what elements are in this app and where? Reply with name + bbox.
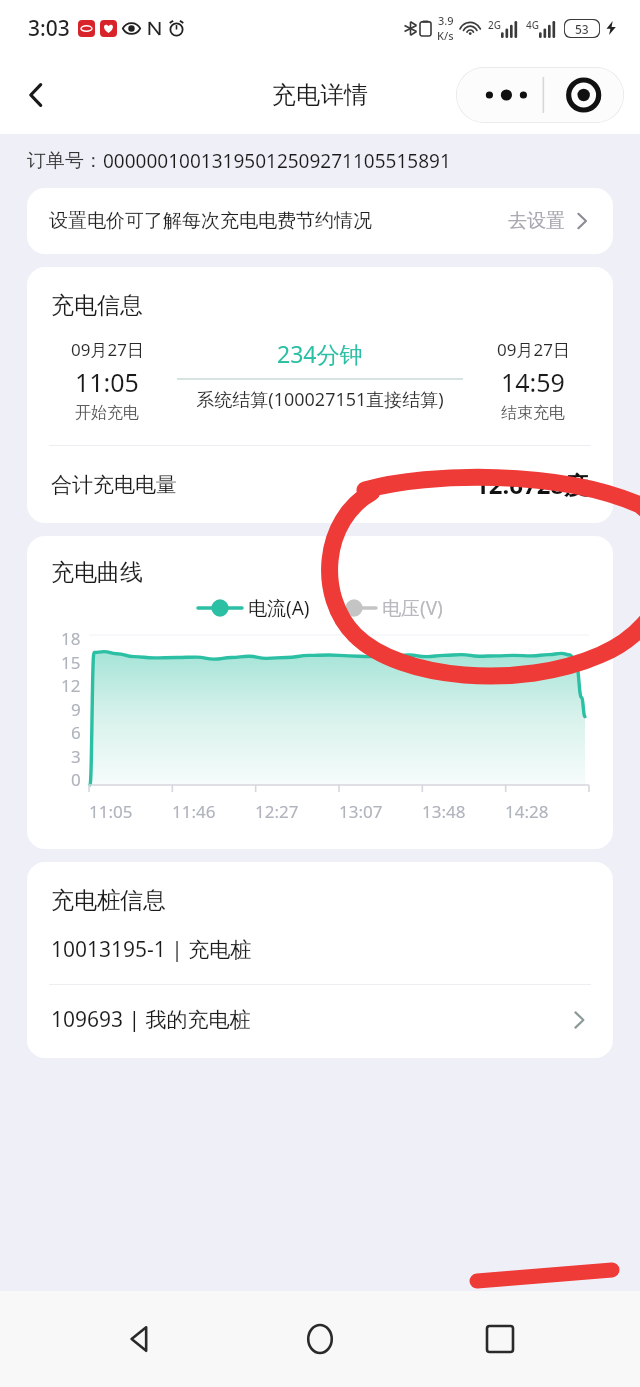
staticText: K/s	[437, 28, 454, 43]
staticText: 12	[61, 674, 81, 697]
staticText: 2G	[488, 18, 501, 32]
staticText: 设置电价可了解每次充电电费节约情况	[49, 209, 372, 233]
staticText: 234分钟	[277, 338, 363, 369]
staticText: 18	[61, 627, 81, 650]
staticText: 充电曲线	[51, 558, 143, 587]
staticText: 14:59	[501, 365, 565, 399]
button[interactable]: Home	[280, 1299, 360, 1379]
staticText: 12.6728度	[475, 468, 589, 501]
staticText: 3:03	[28, 14, 70, 43]
staticText: 系统结算(100027151直接结算)	[196, 387, 444, 412]
button[interactable]: Recents	[460, 1299, 540, 1379]
button[interactable]: Back	[100, 1299, 180, 1379]
staticText: 0	[71, 768, 81, 791]
staticText: 3.9	[438, 13, 454, 28]
staticText: 4G	[526, 18, 539, 32]
staticText: 11:05	[89, 800, 133, 823]
staticText: 充电信息	[51, 291, 143, 320]
staticText: 12:27	[255, 800, 299, 823]
staticText: 15	[61, 651, 81, 674]
staticText: 去设置	[508, 209, 565, 233]
staticText: 09月27日	[497, 338, 570, 361]
staticText: 14:28	[505, 800, 549, 823]
staticText: 11:46	[172, 800, 216, 823]
staticText: 10013195-1 | 充电桩	[51, 935, 252, 964]
button[interactable]: 109693 | 我的充电桩	[27, 985, 613, 1058]
staticText: 合计充电电量	[51, 472, 177, 498]
staticText: 结束充电	[501, 403, 565, 423]
button[interactable]: 设置电价可了解每次充电电费节约情况	[27, 188, 613, 254]
staticText: 11:05	[75, 365, 139, 399]
button[interactable]: Back	[10, 69, 62, 121]
staticText: 109693 | 我的充电桩	[51, 1005, 251, 1034]
staticText: 电压(V)	[382, 595, 443, 621]
staticText: 订单号：	[27, 149, 103, 173]
staticText: 13:07	[339, 800, 383, 823]
staticText: 13:48	[422, 800, 466, 823]
staticText: 开始充电	[75, 403, 139, 423]
staticText: 9	[71, 698, 81, 721]
staticText: 充电详情	[272, 80, 368, 110]
staticText: 6	[71, 721, 81, 744]
staticText: 53	[575, 21, 589, 37]
staticText: 电流(A)	[248, 595, 310, 621]
staticText: 3	[71, 745, 81, 768]
staticText: 09月27日	[71, 338, 144, 361]
staticText: 充电桩信息	[51, 886, 166, 915]
staticText: 00000010013195012509271105515891	[103, 148, 451, 174]
